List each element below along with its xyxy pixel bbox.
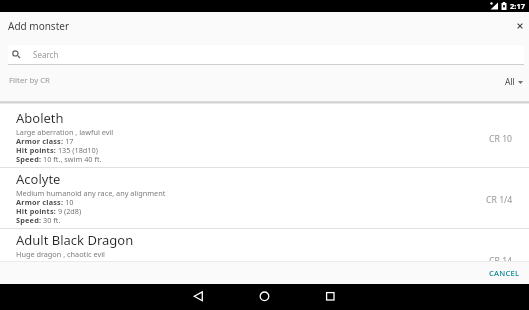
staticText: Search <box>33 49 59 60</box>
button[interactable] <box>177 284 353 310</box>
button[interactable]: CANCEL <box>485 265 524 281</box>
staticText: CR 10 <box>489 133 513 145</box>
staticText: Speed: 10 ft., swim 40 ft. <box>16 154 102 164</box>
staticText: Add monster <box>8 19 70 33</box>
staticText: Aboleth <box>16 109 64 127</box>
staticText: Hit points: 9 (2d8) <box>16 206 82 216</box>
staticText: Armor class: 19 <box>16 258 74 261</box>
staticText: Acolyte <box>16 170 61 188</box>
button[interactable]: Aboleth <box>0 107 529 167</box>
button[interactable]: Acolyte <box>0 168 529 228</box>
button[interactable]: All <box>505 76 523 88</box>
staticText: Armor class: 17 <box>16 136 74 146</box>
staticText: CR 1/4 <box>486 194 513 206</box>
staticText: 2:17 <box>510 1 525 11</box>
staticText: All <box>505 76 515 88</box>
button[interactable]: Search <box>8 45 524 64</box>
button[interactable]: Adult Black Dragon <box>0 229 529 261</box>
staticText: Filter by CR <box>9 75 50 86</box>
staticText: CANCEL <box>489 268 520 278</box>
staticText: Medium humanoid any race, any alignment <box>16 188 166 198</box>
staticText: Huge dragon , chaotic evil <box>16 249 105 259</box>
button[interactable] <box>514 20 526 32</box>
staticText: Large aberration , lawful evil <box>16 127 114 137</box>
staticText: Hit points: 135 (18d10) <box>16 145 98 155</box>
staticText: CR 14 <box>489 255 513 261</box>
staticText: Adult Black Dragon <box>16 231 134 249</box>
staticText: Speed: 30 ft. <box>16 215 61 225</box>
staticText: Armor class: 10 <box>16 197 74 207</box>
